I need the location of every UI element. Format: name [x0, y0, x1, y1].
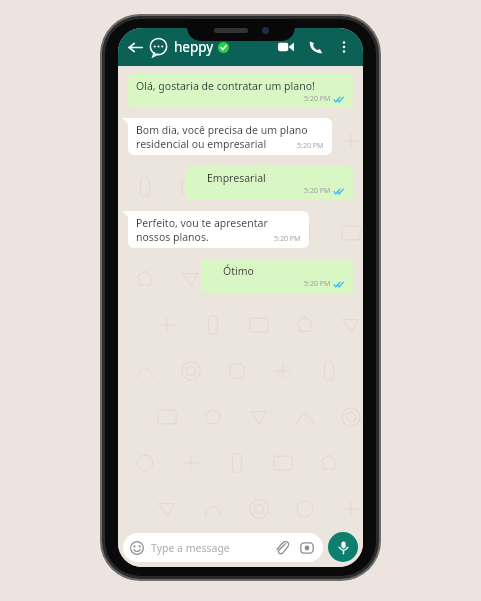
staticText: nossos planos. [136, 230, 209, 244]
staticText: Type a message [151, 541, 230, 555]
button[interactable]: Perfeito, vou te apresentar [128, 211, 309, 248]
button[interactable]: Voice message [328, 532, 358, 562]
staticText: 5:20 PM [274, 234, 301, 244]
staticText: 5:20 PM [304, 279, 331, 289]
button[interactable]: Type a message [123, 533, 323, 562]
staticText: Olá, gostaria de contratar um plano! [136, 79, 315, 93]
button[interactable]: Empresarial [185, 166, 353, 200]
button[interactable]: Bom dia, você precisa de um plano [128, 118, 332, 155]
button[interactable]: Video call [275, 36, 297, 58]
button[interactable]: Olá, gostaria de contratar um plano! [128, 74, 353, 108]
button[interactable]: Profile [148, 37, 169, 58]
button[interactable]: Call [305, 36, 327, 58]
staticText: Bom dia, você precisa de um plano [136, 123, 308, 137]
button[interactable]: More options [334, 37, 354, 57]
staticText: 5:20 PM [304, 94, 331, 104]
staticText: Empresarial [207, 171, 266, 185]
staticText: heppy [174, 38, 214, 56]
button[interactable]: Ótimo [201, 259, 353, 293]
staticText: residencial ou empresarial [136, 137, 267, 151]
button[interactable]: Back [125, 37, 145, 57]
staticText: Ótimo [223, 264, 254, 278]
staticText: 5:20 PM [304, 186, 331, 196]
staticText: 5:20 PM [297, 141, 324, 151]
button[interactable]: Camera [299, 540, 315, 556]
staticText: Perfeito, vou te apresentar [136, 216, 268, 230]
button[interactable]: Attach [274, 540, 290, 556]
